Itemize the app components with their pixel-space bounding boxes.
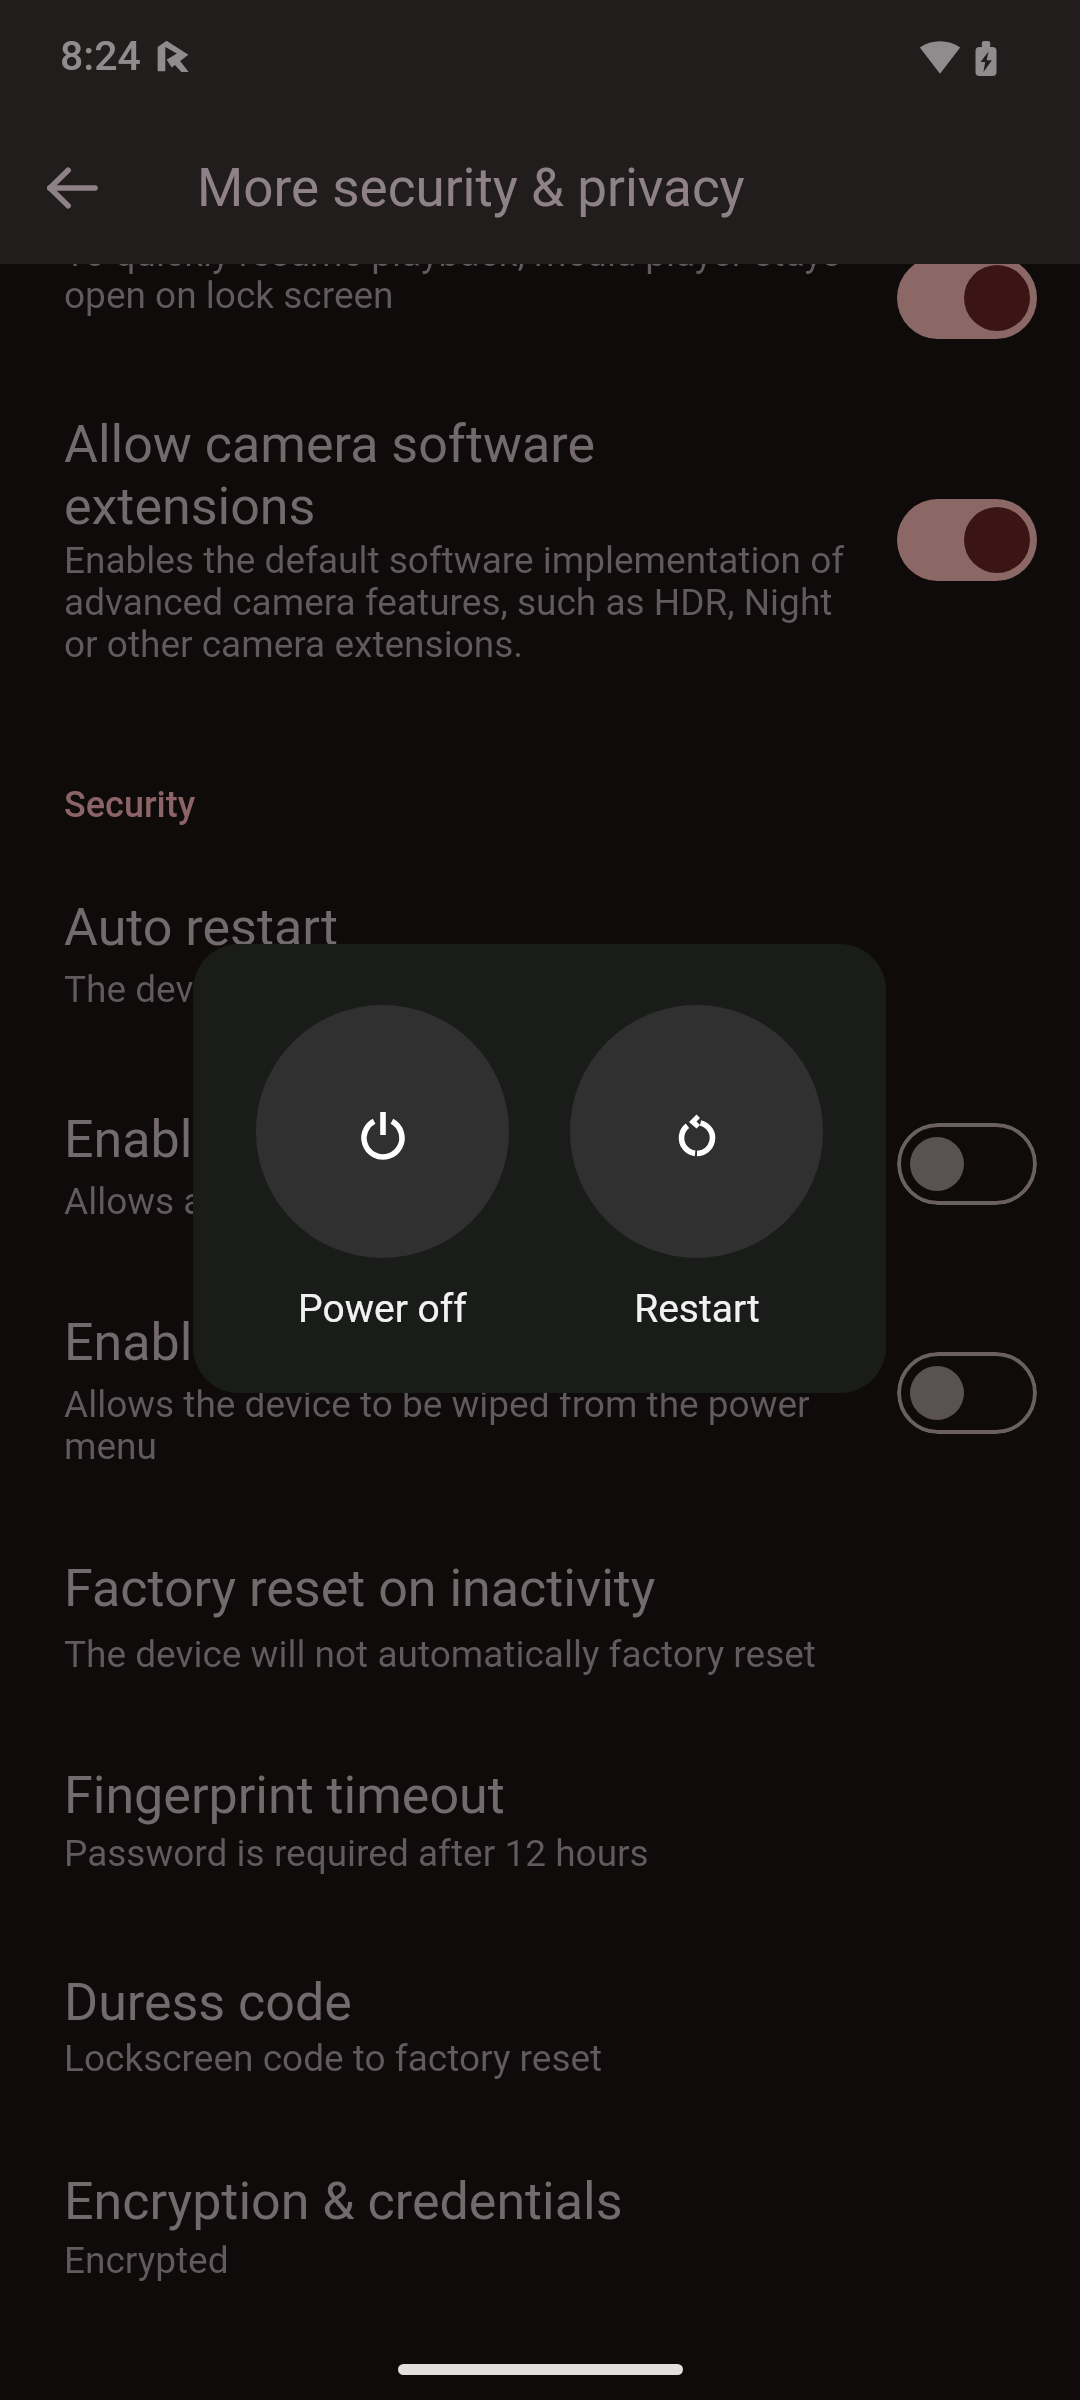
staticText: The device will restart automatically — [64, 968, 1024, 1011]
button[interactable]: Auto restart — [0, 897, 1080, 1011]
staticText: Auto restart — [64, 897, 1024, 958]
staticText: To quickly resume playback, media player… — [64, 232, 904, 317]
button[interactable]: Toggle off — [897, 1352, 1037, 1434]
button[interactable]: Encryption & credentials — [0, 2171, 1080, 2282]
staticText: More security & privacy — [197, 157, 745, 219]
staticText: Allow camera software extensions — [64, 414, 684, 537]
button[interactable]: Power off — [256, 1005, 509, 1258]
staticText: Encryption & credentials — [64, 2171, 1024, 2232]
staticText: Enable automatic lockdown — [64, 1109, 1024, 1170]
button[interactable]: Factory reset on inactivity — [0, 1558, 1080, 1676]
button[interactable]: Toggle on — [897, 499, 1037, 581]
staticText: Lockscreen code to factory reset — [64, 2037, 1024, 2080]
other: Notification — [157, 40, 189, 72]
staticText: Encrypted — [64, 2239, 1024, 2282]
button[interactable]: Enable power menu wipe — [0, 1312, 1080, 1468]
button[interactable]: Fingerprint timeout — [0, 1765, 1080, 1875]
button[interactable]: Toggle on — [897, 257, 1037, 339]
button[interactable]: Enable automatic lockdown — [0, 1109, 1080, 1223]
staticText: 8:24 — [60, 32, 141, 80]
button[interactable]: Back — [26, 142, 118, 234]
button[interactable]: Toggle off — [897, 1123, 1037, 1205]
staticText: Password is required after 12 hours — [64, 1832, 1024, 1875]
staticText: Allows the device to be wiped from the p… — [64, 1383, 854, 1468]
staticText: Allows a lockdown to happen — [64, 1180, 1024, 1223]
staticText: Security — [64, 784, 196, 826]
staticText: Enable power menu wipe — [64, 1312, 1024, 1373]
button[interactable]: Allow camera software extensions — [0, 414, 1080, 666]
staticText: Duress code — [64, 1972, 1024, 2033]
staticText: The device will not automatically factor… — [64, 1633, 1024, 1676]
staticText: Enables the default software implementat… — [64, 539, 864, 666]
button[interactable]: Restart — [570, 1005, 823, 1258]
staticText: Factory reset on inactivity — [64, 1558, 1024, 1619]
staticText: Fingerprint timeout — [64, 1765, 1024, 1826]
staticText: Power off — [298, 1286, 467, 1332]
button[interactable]: Duress code — [0, 1972, 1080, 2080]
staticText: Restart — [634, 1286, 760, 1332]
